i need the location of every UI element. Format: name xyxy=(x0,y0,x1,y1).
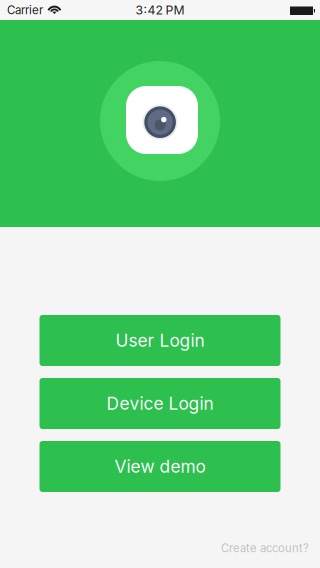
button[interactable]: Device Login xyxy=(39,378,280,429)
button[interactable]: User Login xyxy=(39,315,280,366)
staticText: User Login xyxy=(115,330,204,351)
staticText: Device Login xyxy=(106,393,213,414)
staticText: View demo xyxy=(114,456,205,477)
staticText: Carrier xyxy=(7,3,43,17)
staticText: 3:42 PM xyxy=(135,3,184,17)
button[interactable]: Create account? xyxy=(211,535,320,568)
button[interactable]: View demo xyxy=(39,441,280,492)
staticText: Create account? xyxy=(221,541,309,555)
